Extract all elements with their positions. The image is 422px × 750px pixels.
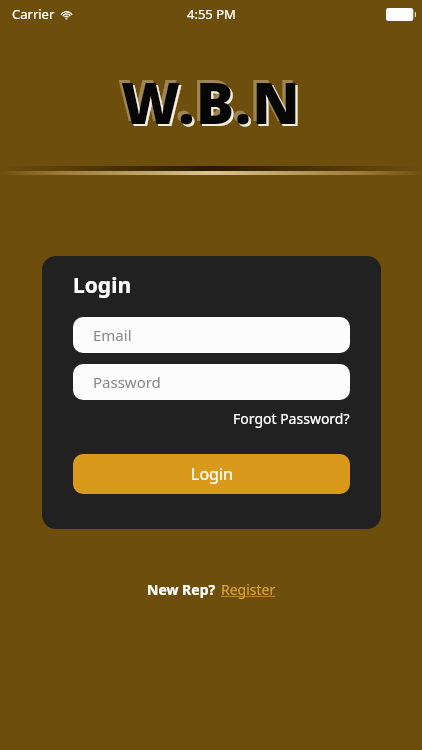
staticText: New Rep? [147,580,216,599]
other: Wi-Fi signal [60,8,73,21]
staticText: Login [73,271,132,300]
staticText: W.B.N [118,60,298,138]
button[interactable]: Forgot Password? [233,409,350,428]
button[interactable]: Register [221,580,276,599]
staticText: W.B.N [121,63,301,141]
staticText: W.B.N [123,65,303,143]
button[interactable]: Login [73,454,350,494]
staticText: Register [221,580,276,599]
other: Battery full [386,8,416,21]
button[interactable]: Password [73,364,350,400]
staticText: Email [93,325,132,345]
staticText: 4:55 PM [187,5,236,23]
button[interactable]: Email [73,317,350,353]
staticText: Login [191,463,233,485]
staticText: Carrier [12,5,55,23]
staticText: Forgot Password? [233,409,350,428]
staticText: Password [93,372,161,392]
